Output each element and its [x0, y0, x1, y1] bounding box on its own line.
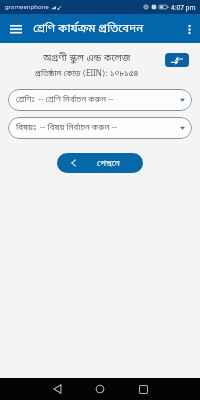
button[interactable]: Switch institution — [165, 53, 189, 67]
staticText: -- শ্রেণি নির্বাচন করুন -- — [38, 95, 114, 106]
staticText: -- বিষয় নির্বাচন করুন -- — [40, 123, 118, 134]
button[interactable]: More options — [178, 14, 200, 43]
button[interactable]: পেছনে — [57, 153, 143, 173]
button[interactable]: বিষয়ঃ — [8, 117, 192, 139]
staticText: অগ্রণী স্কুল এন্ড কলেজ — [43, 52, 131, 65]
staticText: বিষয়ঃ — [16, 123, 37, 134]
button[interactable]: Back — [46, 378, 68, 400]
staticText: 4:07 pm — [171, 3, 196, 12]
button[interactable]: Recent apps — [132, 378, 154, 400]
staticText: শ্রেণিঃ — [16, 95, 35, 106]
button[interactable]: শ্রেণিঃ — [8, 89, 192, 111]
button[interactable]: Home — [89, 378, 111, 400]
staticText: পেছনে — [97, 158, 120, 169]
button[interactable]: Open navigation menu — [0, 14, 31, 43]
staticText: শ্রেণি কার্যক্রম প্রতিবেদন — [33, 21, 144, 36]
staticText: প্রতিষ্ঠান কোড (EIIN): ১০৮১৫৪ — [35, 67, 139, 79]
staticText: grameenphone — [5, 3, 49, 11]
